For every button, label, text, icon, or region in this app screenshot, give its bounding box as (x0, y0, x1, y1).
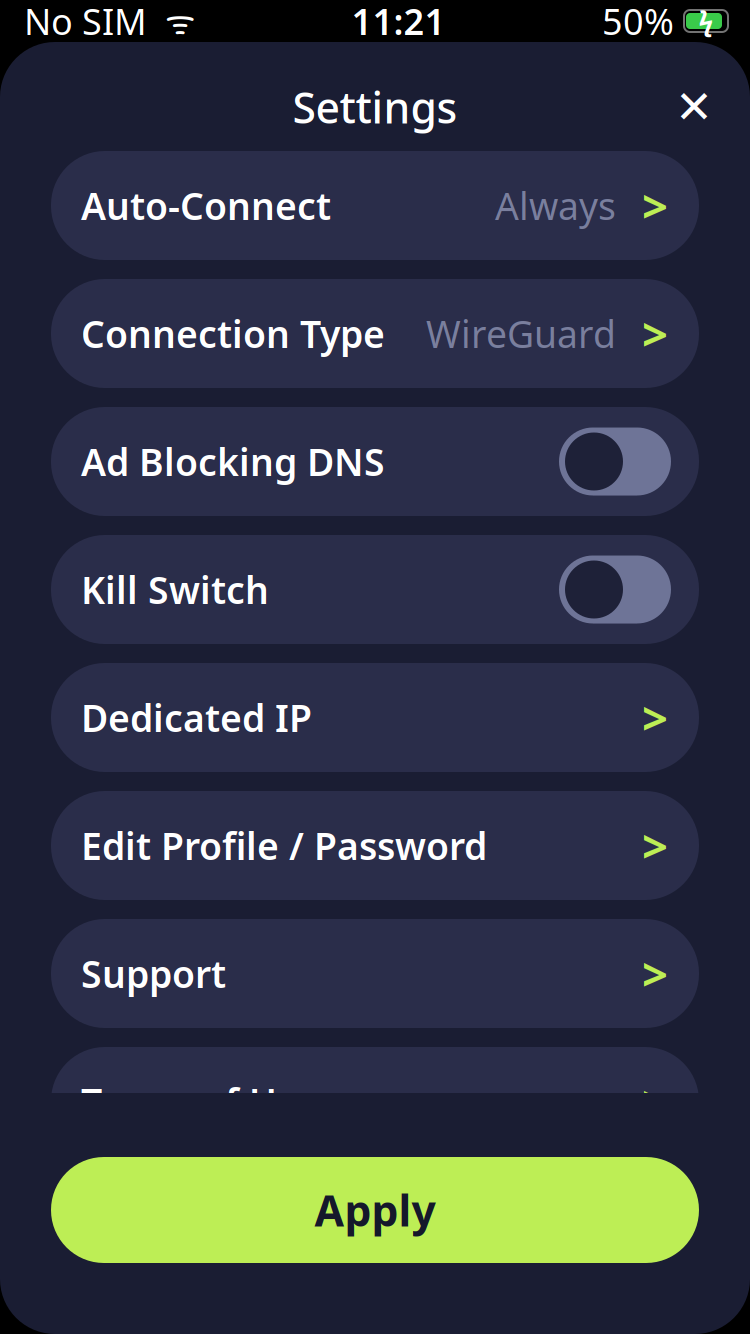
button[interactable]: Ad Blocking DNS (51, 407, 699, 516)
button[interactable]: Dedicated IP (51, 663, 699, 772)
staticText: WireGuard (426, 309, 616, 358)
staticText: ✕ (675, 81, 713, 133)
staticText: > (642, 943, 668, 1004)
button[interactable]: Terms of Use (51, 1047, 699, 1156)
staticText: Ad Blocking DNS (81, 437, 385, 486)
button[interactable]: Support (51, 919, 699, 1028)
staticText: Terms of Use (81, 1077, 317, 1126)
staticText: 11:21 (351, 0, 445, 45)
staticText: > (642, 687, 668, 748)
staticText: Dedicated IP (81, 693, 312, 742)
staticText: > (642, 303, 668, 364)
staticText: ᯤ (147, 0, 195, 43)
staticText: 50% (602, 0, 674, 45)
staticText: > (642, 815, 668, 876)
staticText: Auto-Connect (81, 181, 331, 230)
staticText: No SIM (24, 0, 147, 45)
staticText: > (642, 1071, 668, 1132)
button[interactable]: Auto-Connect (51, 151, 699, 260)
button[interactable]: Connection Type (51, 279, 699, 388)
staticText: Always (495, 181, 616, 230)
button[interactable]: Edit Profile / Password (51, 791, 699, 900)
staticText: Settings (292, 79, 457, 135)
staticText: Support (81, 949, 226, 998)
button[interactable]: Apply (51, 1157, 699, 1263)
button[interactable]: Kill Switch (51, 535, 699, 644)
staticText: Apply (314, 1182, 435, 1238)
staticText: Kill Switch (81, 565, 269, 614)
button[interactable]: Close (662, 75, 726, 139)
staticText: Edit Profile / Password (81, 821, 487, 870)
staticText: ϟ (698, 3, 713, 39)
staticText: Connection Type (81, 309, 385, 358)
staticText: > (642, 175, 668, 236)
